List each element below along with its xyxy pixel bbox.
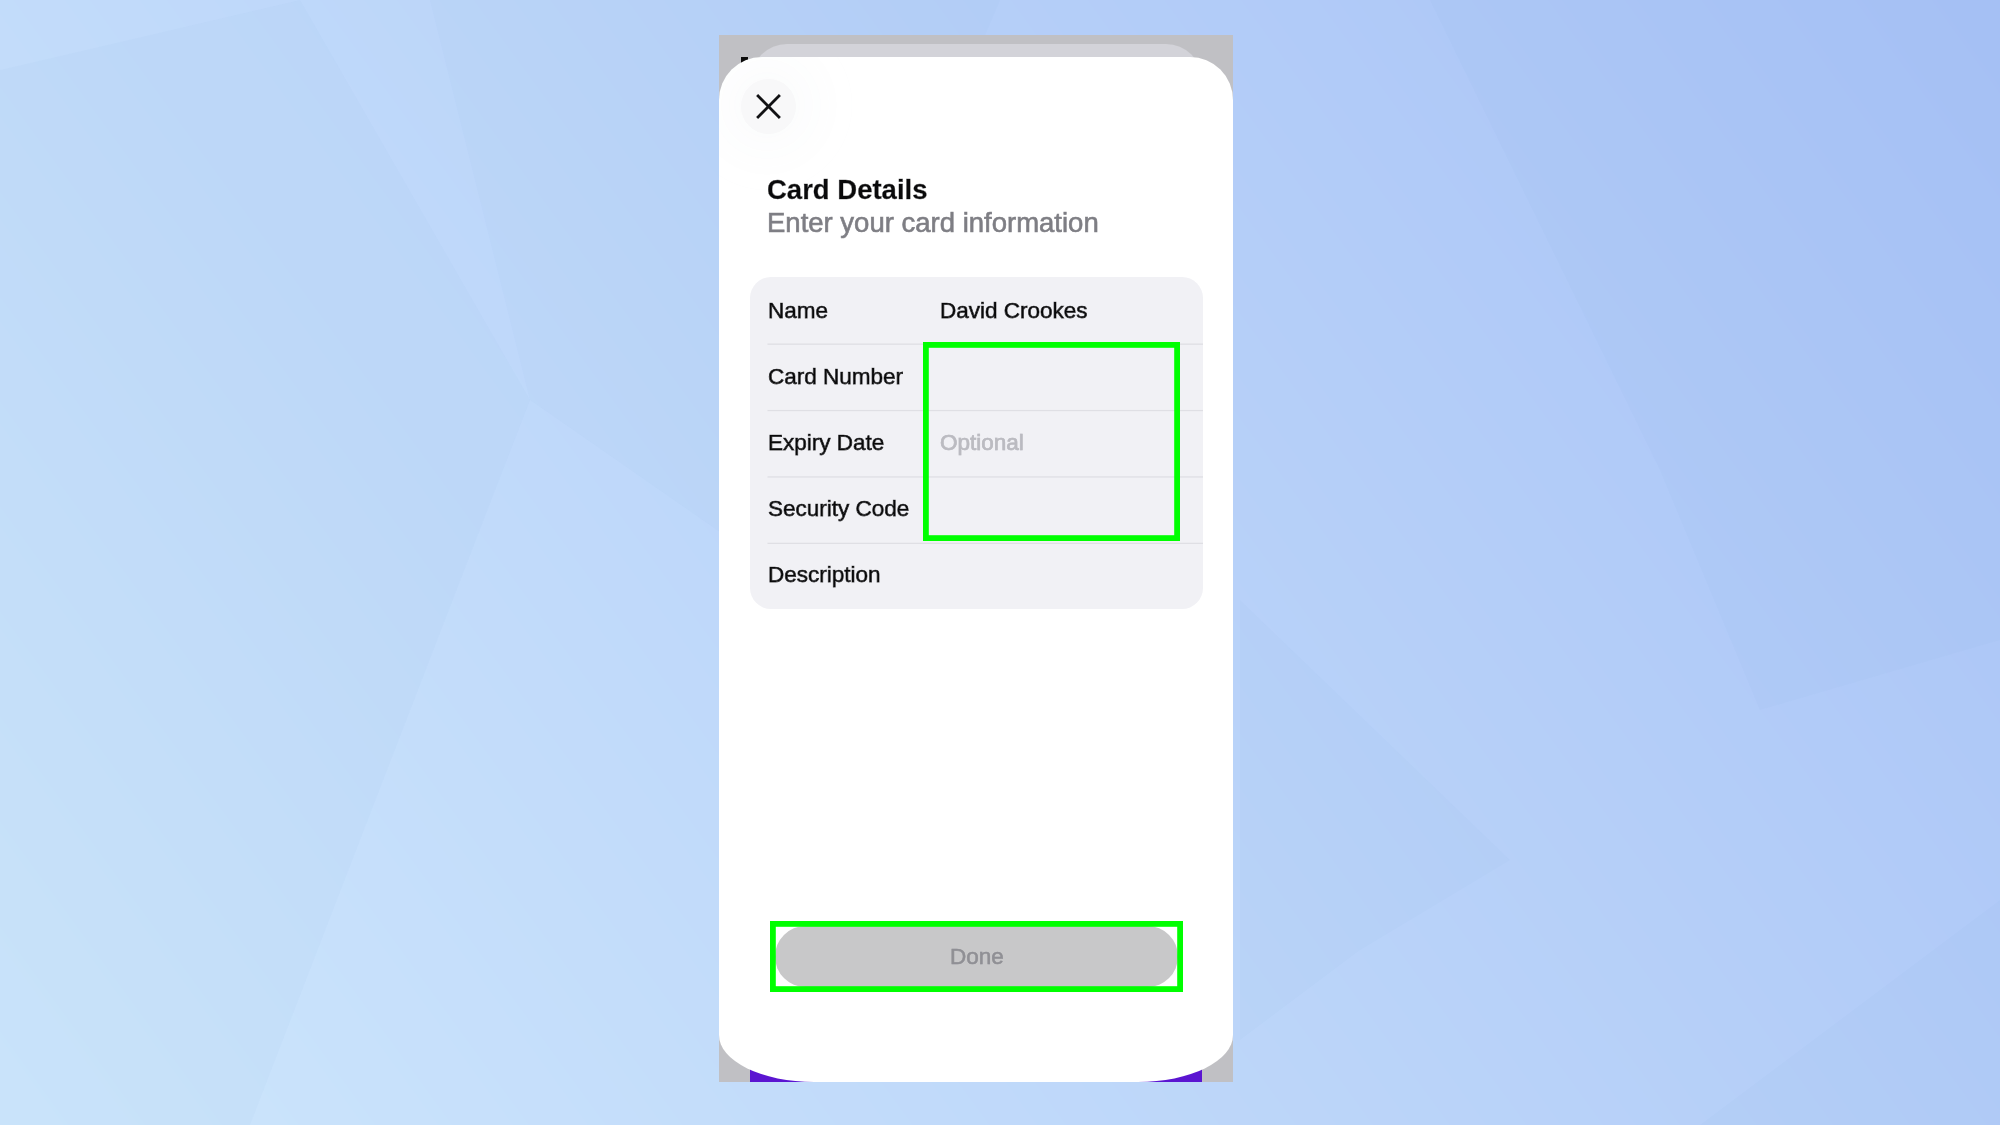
staticText: Card Details [767, 174, 928, 205]
staticText: Enter your card information [767, 207, 1099, 238]
staticText: Name [768, 298, 829, 323]
button[interactable]: Card Number [750, 343, 1203, 409]
button[interactable]: Description [750, 541, 1203, 607]
button[interactable]: Expiry Date [750, 409, 1203, 475]
staticText: Done [950, 944, 1004, 969]
button[interactable]: Close [741, 79, 796, 134]
staticText: Card Number [768, 364, 904, 389]
staticText: Card Number [768, 364, 904, 389]
staticText: Optional [940, 430, 1024, 455]
button[interactable]: Name [750, 277, 1203, 343]
staticText: Security Code [768, 496, 910, 521]
staticText: Description [768, 562, 881, 587]
staticText: Enter your card information [767, 207, 1099, 238]
staticText: Expiry Date [768, 430, 885, 455]
staticText: David Crookes [940, 298, 1088, 323]
staticText: Name [768, 298, 829, 323]
staticText: Security Code [768, 496, 910, 521]
staticText: Done [950, 944, 1004, 969]
staticText: Expiry Date [768, 430, 885, 455]
staticText: David Crookes [940, 298, 1088, 323]
button[interactable]: Done [775, 926, 1178, 987]
button[interactable]: Security Code [750, 475, 1203, 541]
staticText: Optional [940, 430, 1024, 455]
staticText: Description [768, 562, 881, 587]
staticText: Card Details [767, 174, 928, 205]
